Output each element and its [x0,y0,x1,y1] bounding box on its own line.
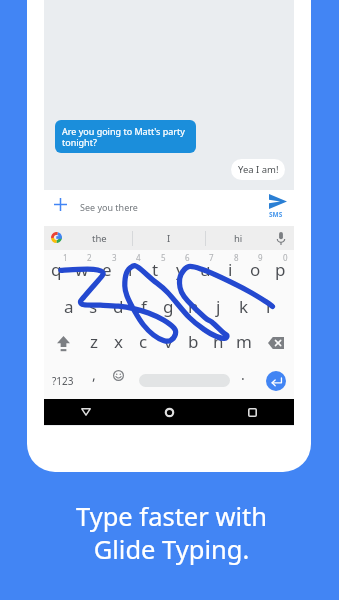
staticText: a [64,295,74,318]
button[interactable]: q [44,254,69,284]
staticText: q [51,258,62,281]
button[interactable]: u [193,254,218,284]
button[interactable]: i [218,254,243,284]
button[interactable]: j [206,288,231,325]
staticText: hi [234,232,243,245]
button[interactable]: Google search [51,232,62,243]
button[interactable]: z [81,323,106,360]
staticText: See you there [80,201,138,213]
button[interactable]: b [181,323,206,360]
button[interactable]: t [143,254,168,284]
staticText: 7 [209,252,214,263]
button[interactable]: s [81,288,106,325]
button[interactable]: w [69,254,94,284]
button[interactable]: Send SMS [265,191,291,221]
staticText: h [188,295,199,318]
button[interactable]: e [94,254,119,284]
staticText: d [113,295,124,318]
staticText: 9 [258,252,263,263]
button[interactable]: Backspace [257,325,295,362]
button[interactable]: Enter [257,362,295,399]
button[interactable]: d [106,288,131,325]
button[interactable]: Back [44,399,128,425]
button[interactable]: h [181,288,206,325]
staticText: 2 [87,252,92,263]
button[interactable]: n [206,323,231,360]
staticText: z [90,330,98,353]
button[interactable]: ?123 [44,362,82,399]
staticText: 6 [185,252,190,263]
staticText: p [275,258,286,281]
staticText: the [92,232,107,245]
button[interactable]: . [230,356,255,393]
staticText: k [239,295,249,318]
staticText: SMS [269,210,283,219]
staticText: n [213,330,224,353]
staticText: o [250,258,261,281]
staticText: Type faster with Glide Typing. [2,499,339,566]
button[interactable]: a [56,288,81,325]
staticText: m [236,330,252,353]
staticText: r [128,258,136,281]
staticText: g [163,295,174,318]
staticText: Yea I am! [238,163,279,176]
button[interactable]: f [131,288,156,325]
button[interactable]: Space [131,362,237,399]
staticText: 1 [63,252,68,263]
button[interactable]: l [256,288,281,325]
button[interactable]: Voice input [274,231,288,245]
staticText: 3 [112,252,117,263]
button[interactable]: g [156,288,181,325]
button[interactable]: r [119,254,144,284]
button[interactable]: c [131,323,156,360]
staticText: c [139,330,148,353]
staticText: e [102,258,112,281]
button[interactable]: Add attachment [52,196,68,212]
staticText: f [141,295,147,318]
button[interactable]: Recents [211,399,294,425]
staticText: 8 [234,252,239,263]
staticText: b [188,330,199,353]
staticText: . [241,365,245,384]
staticText: 5 [161,252,166,263]
staticText: l [266,295,271,318]
button[interactable]: y [168,254,193,284]
staticText: ?123 [52,374,74,388]
button[interactable]: the [67,226,132,250]
button[interactable]: I [132,226,205,250]
button[interactable]: o [243,254,268,284]
button[interactable]: x [106,323,131,360]
staticText: y [176,258,185,281]
button[interactable]: k [231,288,256,325]
button[interactable]: Home [128,399,211,425]
button[interactable]: m [231,323,256,360]
button[interactable]: Yea I am! [231,159,285,180]
button[interactable]: Are you going to Matt's party tonight? [55,120,196,153]
staticText: 0 [283,252,288,263]
staticText: i [228,258,233,281]
button[interactable]: v [156,323,181,360]
button[interactable]: Emoji [106,363,130,387]
staticText: w [75,258,89,281]
button[interactable]: Shift [44,325,82,362]
staticText: u [200,258,211,281]
button[interactable]: , [81,356,106,393]
staticText: v [164,330,173,353]
staticText: x [114,330,123,353]
button[interactable]: p [268,254,293,284]
staticText: , [92,365,96,384]
staticText: j [216,295,221,318]
staticText: Are you going to Matt's party tonight? [62,125,192,149]
staticText: s [89,295,98,318]
button[interactable]: hi [205,226,271,250]
staticText: I [167,232,171,245]
staticText: 4 [136,252,141,263]
staticText: t [152,258,159,281]
